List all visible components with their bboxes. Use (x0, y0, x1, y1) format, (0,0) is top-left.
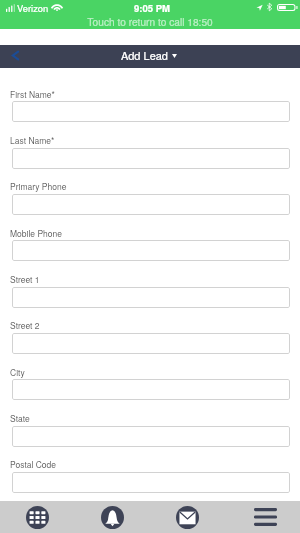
staticText: Primary Phone (10, 180, 67, 192)
button[interactable] (12, 426, 290, 447)
button[interactable]: Add Lead (121, 47, 168, 63)
button[interactable] (12, 472, 290, 493)
button[interactable] (12, 101, 290, 122)
button[interactable]: Notifications (75, 501, 150, 533)
staticText: Street 2 (10, 319, 40, 331)
button[interactable] (12, 333, 290, 354)
staticText: Postal Code (10, 458, 57, 470)
button[interactable]: Apps (0, 501, 75, 533)
staticText: 9:05 PM (134, 1, 170, 15)
staticText: Touch to return to call 18:50 (0, 14, 300, 29)
button[interactable]: Menu (225, 501, 300, 533)
button[interactable] (12, 194, 290, 215)
staticText: Street 1 (10, 273, 40, 285)
button[interactable] (12, 287, 290, 308)
staticText: City (10, 366, 25, 378)
staticText: State (10, 412, 30, 424)
staticText: Last Name* (10, 134, 55, 146)
button[interactable]: Messages (150, 501, 225, 533)
button[interactable] (12, 240, 290, 261)
staticText: Mobile Phone (10, 227, 62, 239)
staticText: First Name* (10, 88, 55, 100)
button[interactable] (12, 379, 290, 400)
button[interactable] (12, 148, 290, 169)
button[interactable]: Back (4, 45, 26, 68)
staticText: Verizon (17, 1, 49, 14)
